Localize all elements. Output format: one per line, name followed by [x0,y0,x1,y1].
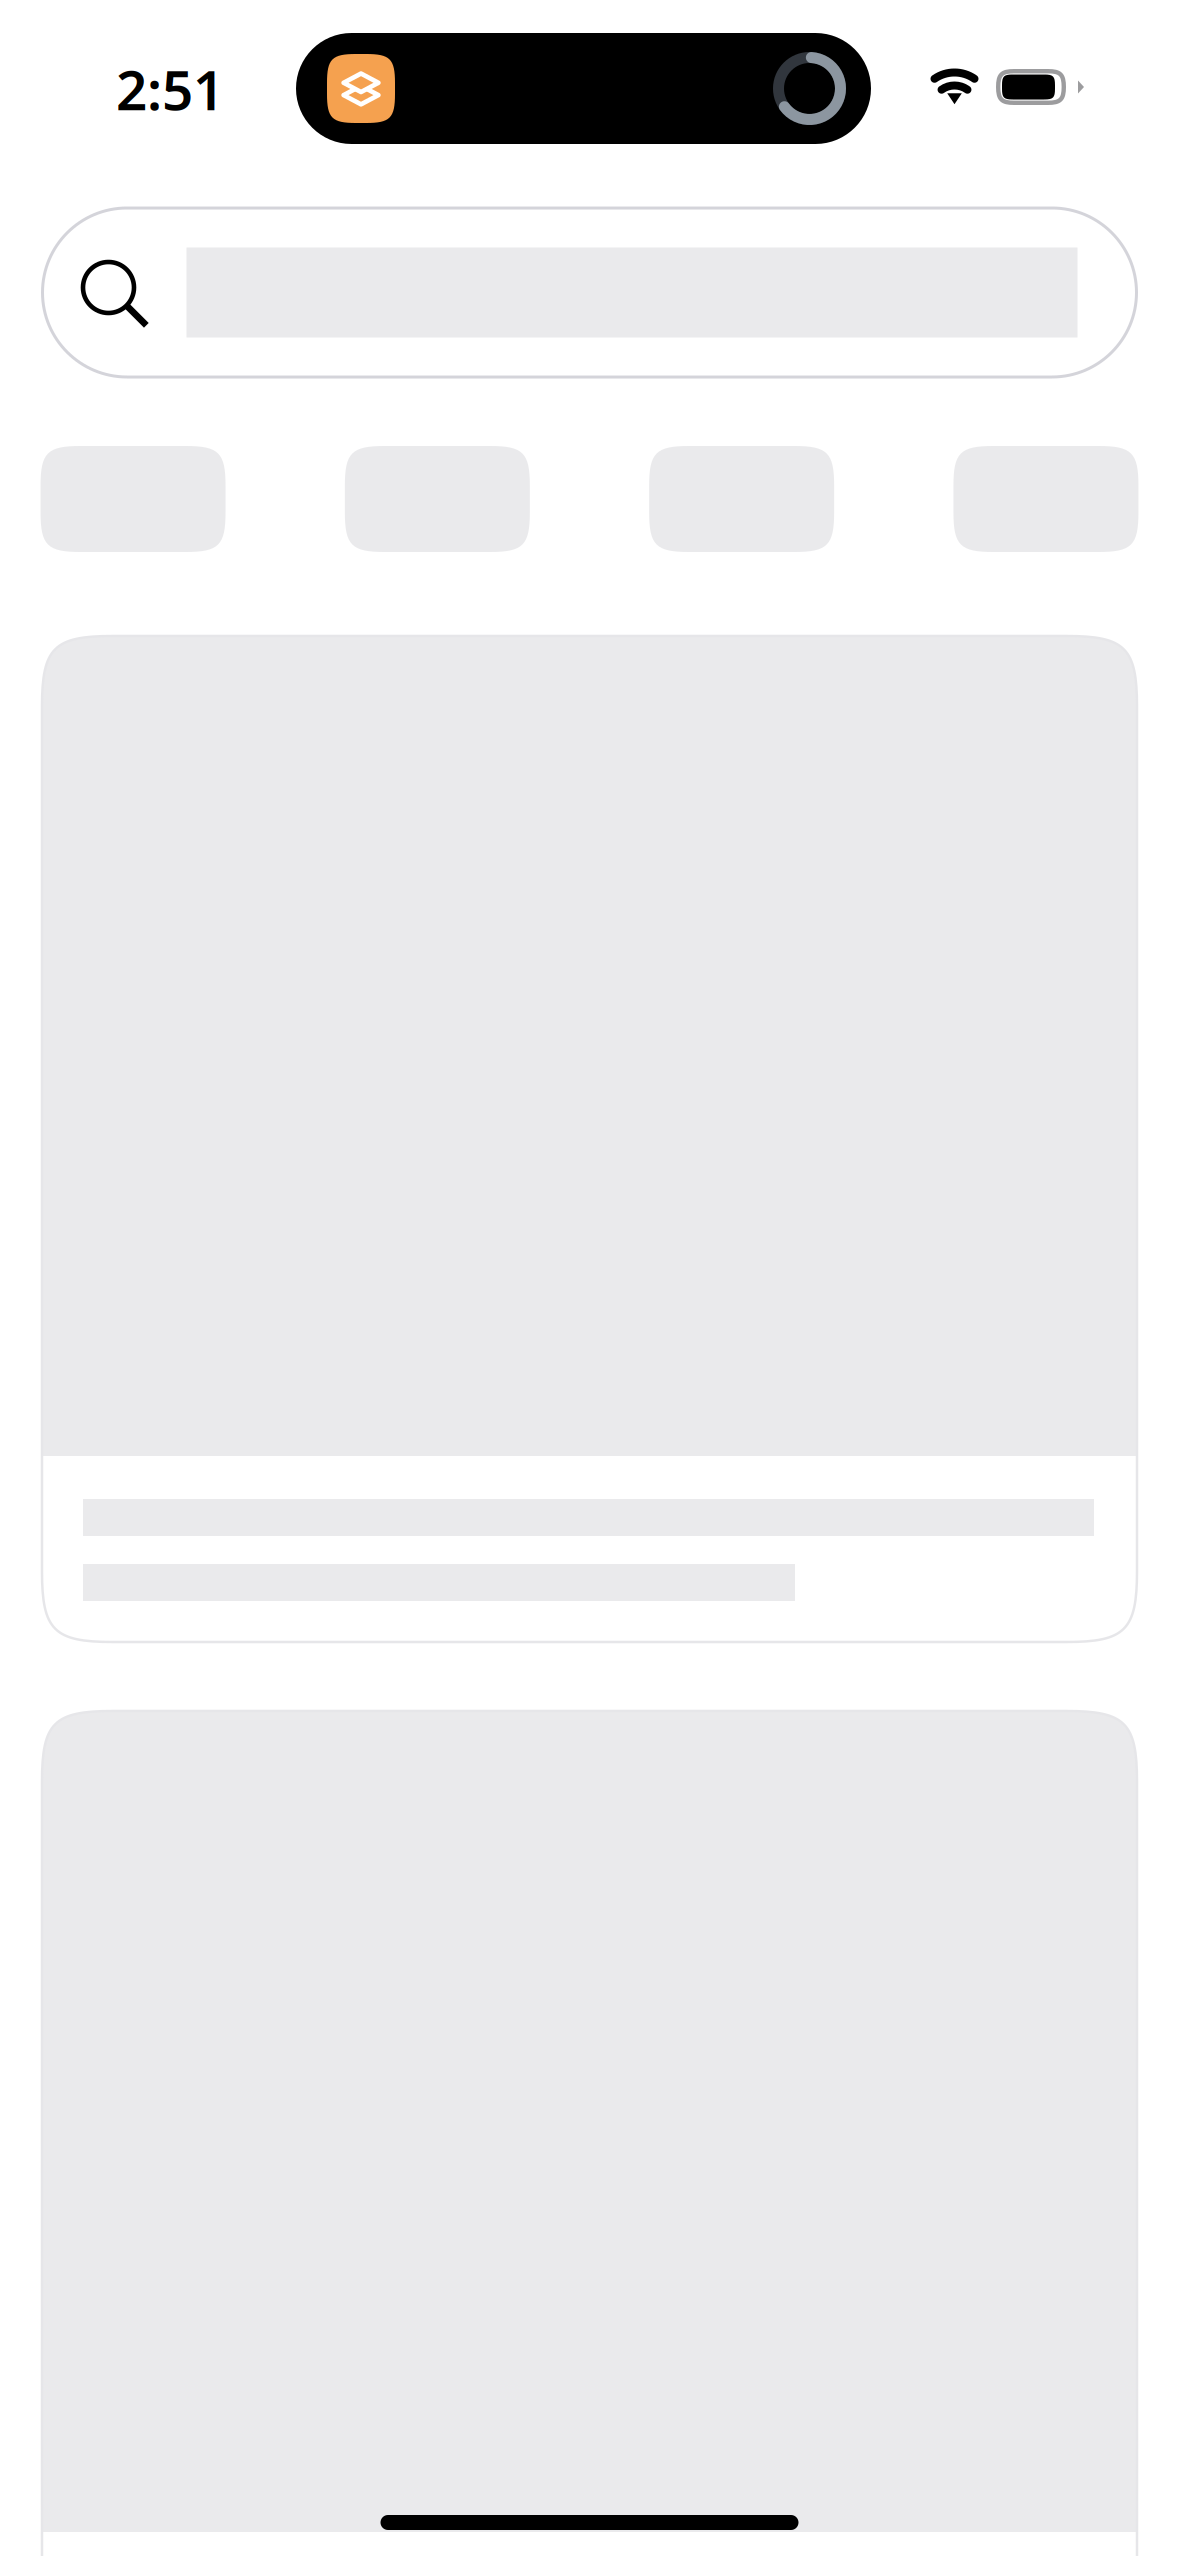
button[interactable]: Filter 1 [40,446,225,552]
button[interactable]: Filter 4 [953,446,1138,552]
button[interactable]: Search [42,208,1136,377]
button[interactable]: Filter 3 [649,446,834,552]
button[interactable]: Loading item 2 [42,1711,1137,2556]
button[interactable]: Loading item 1 [42,636,1137,1642]
staticText: 2:51 [116,53,224,125]
button[interactable]: Filter 2 [345,446,530,552]
